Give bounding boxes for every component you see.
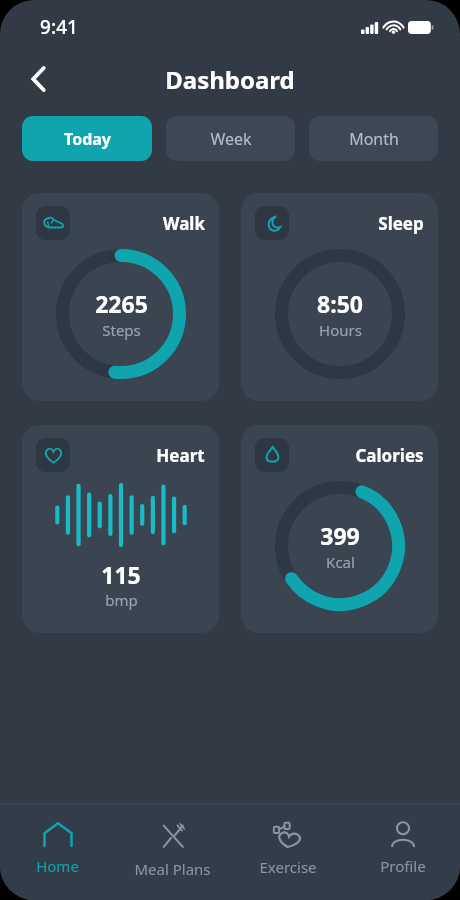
staticText: 2265: [95, 288, 148, 319]
staticText: Today: [64, 128, 111, 150]
staticText: Month: [349, 128, 399, 150]
button[interactable]: Walk: [22, 193, 219, 401]
staticText: bmp: [105, 590, 138, 610]
staticText: Calories: [355, 444, 424, 467]
button[interactable]: Home: [0, 804, 115, 900]
button[interactable]: Today: [22, 116, 152, 161]
button[interactable]: Back: [18, 59, 58, 99]
button[interactable]: Week: [166, 116, 295, 161]
button[interactable]: Month: [309, 116, 438, 161]
staticText: Sleep: [378, 212, 424, 235]
staticText: Kcal: [326, 552, 355, 572]
button[interactable]: Calories: [241, 425, 438, 633]
staticText: Home: [36, 856, 79, 876]
staticText: Meal Plans: [134, 859, 211, 879]
button[interactable]: Profile: [345, 804, 460, 900]
staticText: Walk: [163, 212, 205, 235]
staticText: Steps: [102, 320, 141, 340]
button[interactable]: Exercise: [230, 804, 345, 900]
staticText: 399: [320, 520, 360, 551]
staticText: 8:50: [317, 288, 363, 319]
staticText: Week: [210, 128, 252, 150]
button[interactable]: Heart: [22, 425, 219, 633]
staticText: Dashboard: [165, 63, 295, 96]
staticText: Exercise: [259, 857, 317, 877]
staticText: 9:41: [40, 14, 78, 40]
button[interactable]: Meal Plans: [115, 804, 230, 900]
staticText: Profile: [380, 856, 426, 876]
staticText: 115: [101, 559, 141, 590]
button[interactable]: Sleep: [241, 193, 438, 401]
staticText: Heart: [156, 444, 205, 467]
staticText: Hours: [319, 320, 362, 340]
